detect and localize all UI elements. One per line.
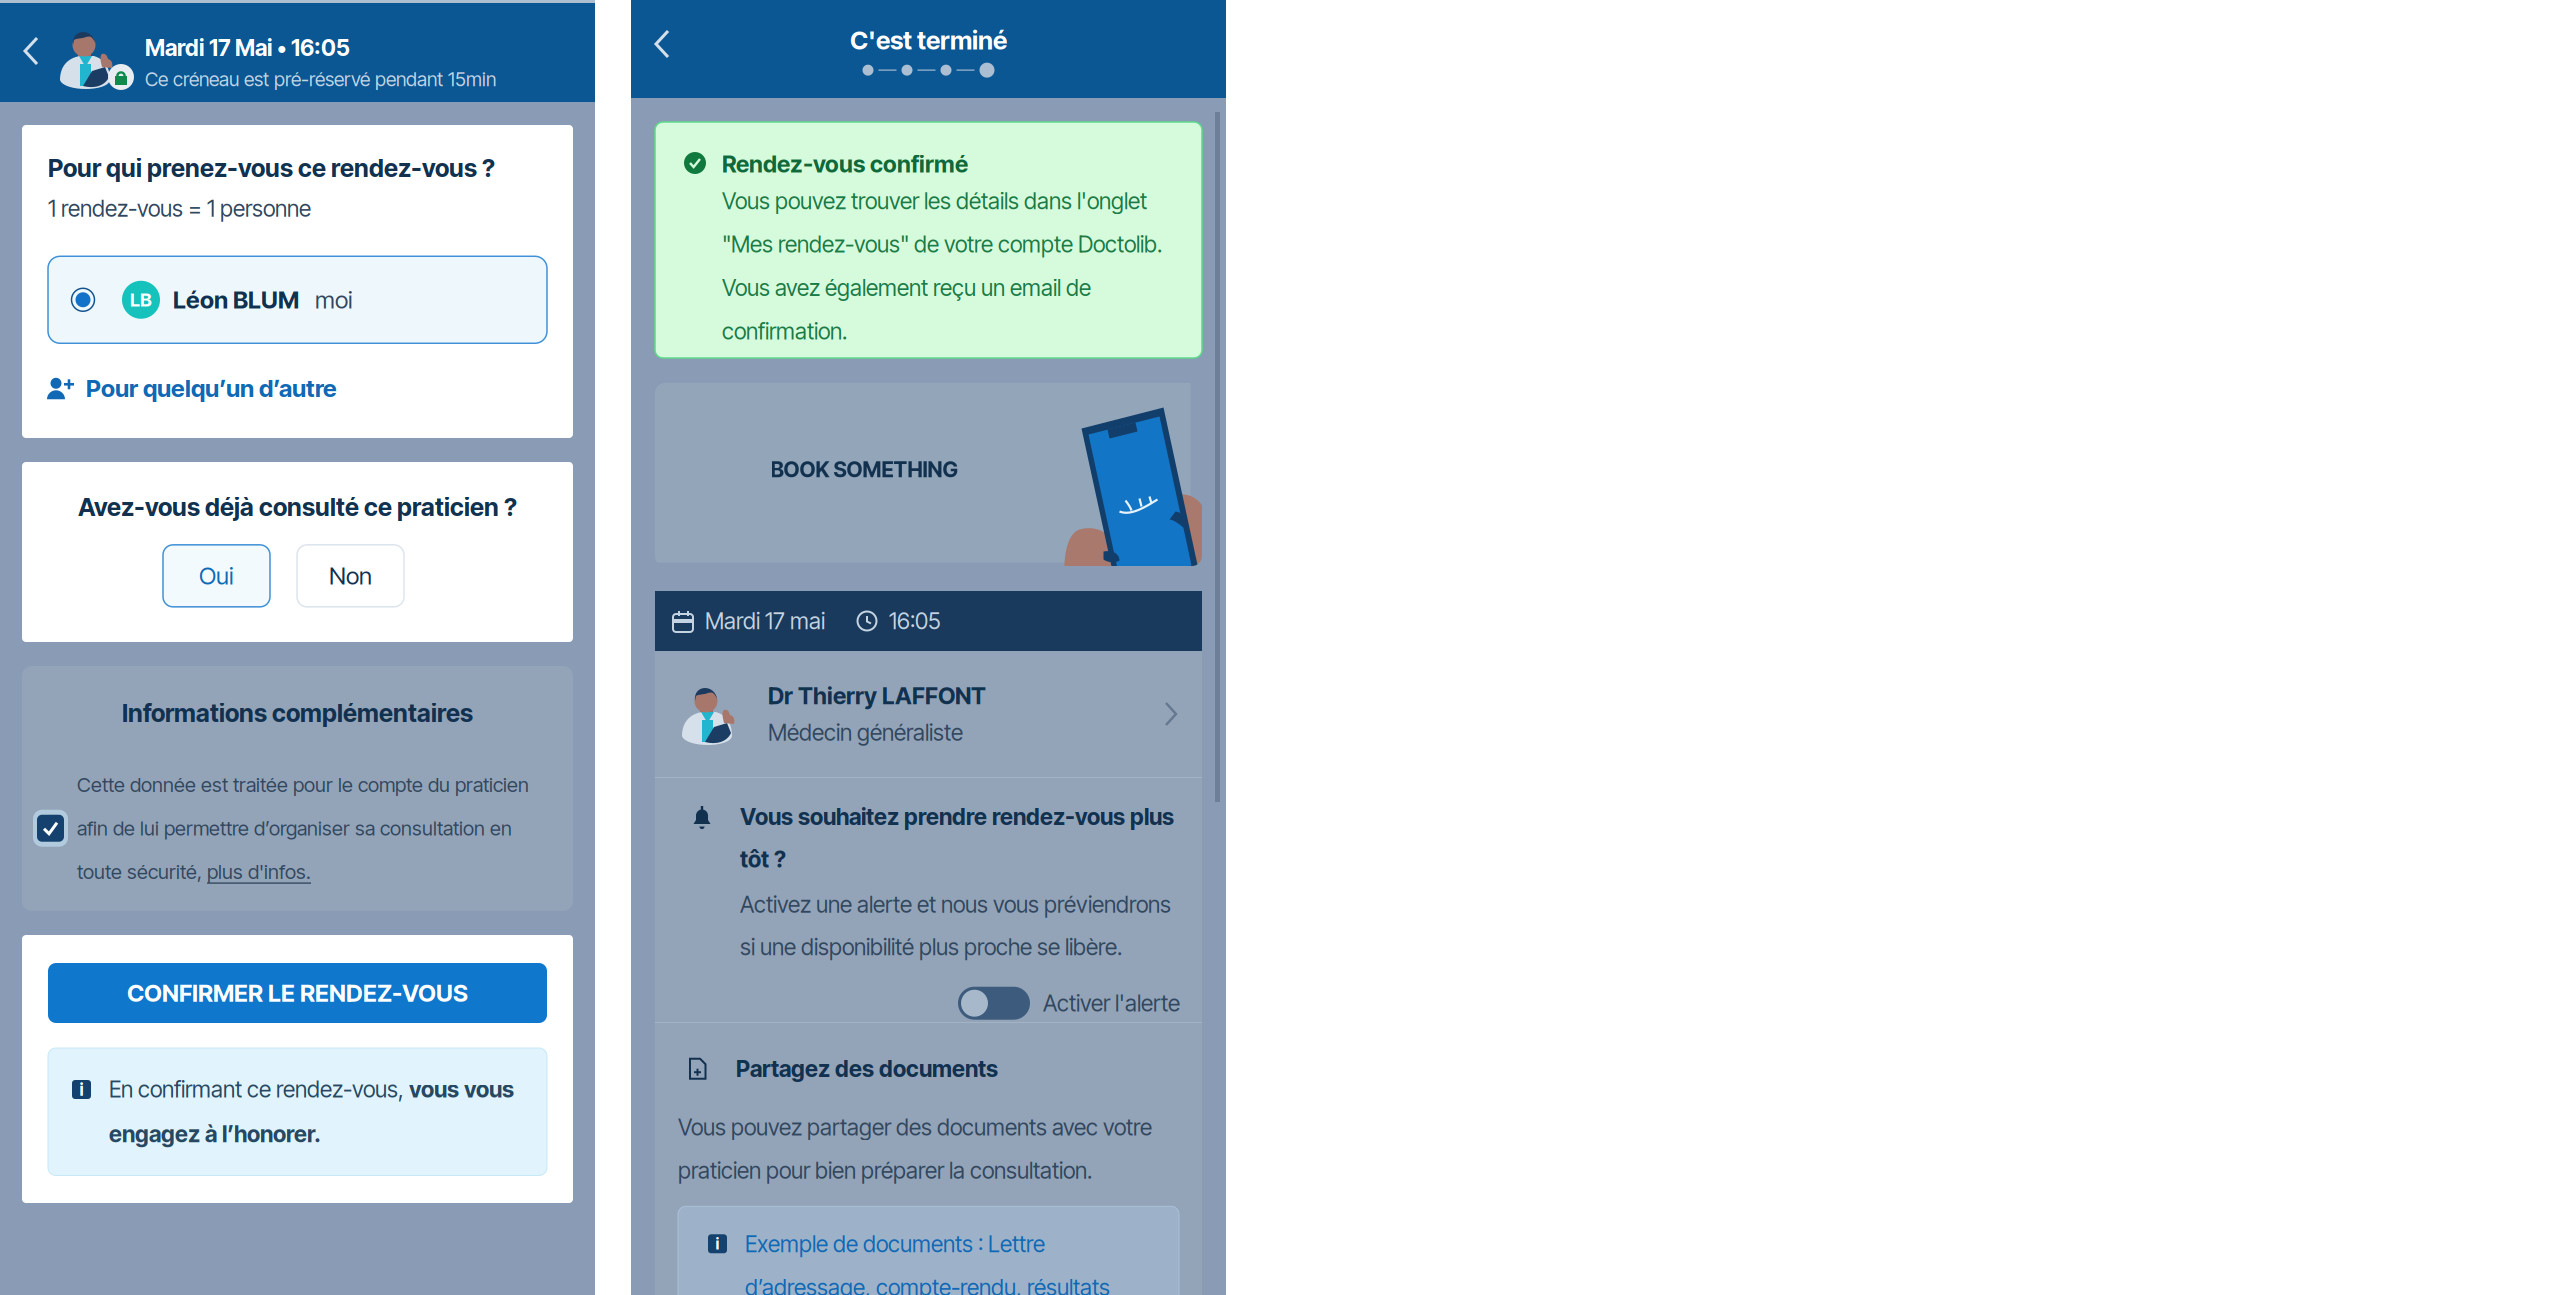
- button[interactable]: Dr Thierry LAFFONT: [655, 651, 1202, 777]
- staticText: 16:05: [889, 607, 941, 635]
- staticText: Léon BLUM: [173, 285, 299, 314]
- staticText: Vous souhaitez prendre rendez-vous plus …: [740, 803, 1174, 873]
- button[interactable]: Non: [297, 545, 404, 607]
- staticText: Pour qui prenez-vous ce rendez-vous ?: [48, 153, 495, 183]
- staticText: Vous pouvez trouver les détails dans l'o…: [722, 187, 1162, 345]
- staticText: Pour quelqu’un d’autre: [86, 374, 337, 403]
- staticText: Non: [329, 561, 372, 590]
- staticText: Ce créneau est pré-réservé pendant 15min: [145, 67, 496, 91]
- staticText: Avez-vous déjà consulté ce praticien ?: [78, 492, 517, 522]
- staticText: Médecin généraliste: [768, 719, 963, 746]
- button[interactable]: Retour: [631, 0, 689, 98]
- staticText: LB: [130, 288, 152, 311]
- button[interactable]: Retour: [0, 3, 58, 101]
- button[interactable]: Oui: [163, 545, 270, 607]
- staticText: Activez une alerte et nous vous préviend…: [740, 891, 1171, 961]
- button[interactable]: LB: [48, 256, 547, 343]
- staticText: Cette donnée est traitée pour le compte …: [77, 773, 529, 884]
- staticText: 1 rendez-vous = 1 personne: [48, 195, 311, 222]
- staticText: Mardi 17 mai: [705, 607, 825, 635]
- staticText: CONFIRMER LE RENDEZ-VOUS: [127, 978, 468, 1007]
- staticText: Rendez-vous confirmé: [722, 150, 968, 178]
- button[interactable]: Activer l'alerte: [958, 987, 1030, 1020]
- staticText: Oui: [199, 561, 234, 590]
- staticText: Vous pouvez partager des documents avec …: [678, 1113, 1152, 1184]
- staticText: C'est terminé: [850, 25, 1007, 56]
- staticText: Activer l'alerte: [1043, 989, 1180, 1017]
- staticText: Partagez des documents: [736, 1055, 998, 1082]
- staticText: i: [715, 1234, 719, 1253]
- staticText: i: [79, 1079, 83, 1100]
- staticText: Exemple de documents : Lettre d’adressag…: [745, 1230, 1110, 1295]
- staticText: moi: [315, 285, 353, 314]
- staticText: Mardi 17 Mai • 16:05: [145, 34, 350, 61]
- staticText: BOOK SOMETHING: [770, 456, 958, 482]
- button[interactable]: Pour quelqu’un d’autre: [48, 343, 547, 403]
- staticText: Informations complémentaires: [122, 698, 473, 728]
- button[interactable]: CONFIRMER LE RENDEZ-VOUS: [48, 963, 547, 1023]
- staticText: En confirmant ce rendez-vous, vous vous …: [109, 1076, 514, 1147]
- staticText: Dr Thierry LAFFONT: [768, 682, 986, 710]
